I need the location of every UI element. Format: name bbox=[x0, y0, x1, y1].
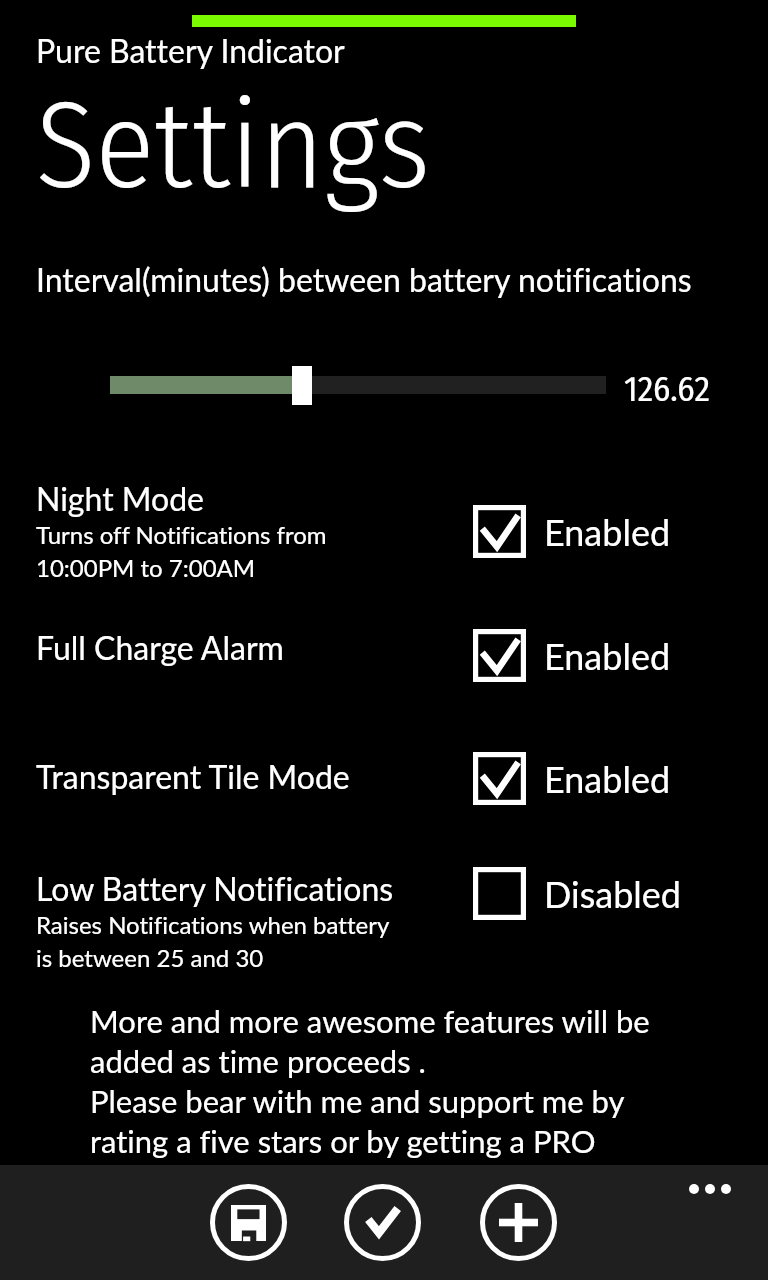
button[interactable]: More options bbox=[681, 1171, 739, 1207]
button[interactable]: Enabled bbox=[473, 752, 671, 805]
staticText: 10:00PM to 7:00AM bbox=[36, 553, 256, 582]
staticText: Turns off Notifications from bbox=[36, 520, 327, 549]
staticText: rating a five stars or by getting a PRO bbox=[90, 1122, 596, 1159]
button[interactable]: Interval slider bbox=[110, 366, 606, 405]
staticText: Enabled bbox=[544, 634, 671, 677]
staticText: More and more awesome features will be bbox=[90, 1002, 650, 1039]
staticText: Enabled bbox=[544, 757, 671, 800]
staticText: Transparent Tile Mode bbox=[36, 757, 350, 795]
button[interactable]: Enabled bbox=[473, 505, 671, 558]
staticText: added as time proceeds . bbox=[90, 1042, 426, 1079]
button[interactable]: Add bbox=[480, 1184, 557, 1261]
button[interactable]: Night Mode bbox=[36, 479, 466, 583]
staticText: Interval(minutes) between battery notifi… bbox=[36, 260, 692, 298]
staticText: Night Mode bbox=[36, 479, 204, 517]
staticText: 126.62 bbox=[624, 368, 710, 410]
button[interactable]: Full Charge Alarm bbox=[36, 628, 466, 666]
button[interactable]: Confirm bbox=[344, 1184, 421, 1261]
staticText: Raises Notifications when battery bbox=[36, 910, 390, 939]
staticText: Low Battery Notifications bbox=[36, 869, 394, 907]
staticText: Settings bbox=[36, 73, 430, 219]
staticText: is between 25 and 30 bbox=[36, 943, 264, 972]
staticText: Enabled bbox=[544, 510, 671, 553]
staticText: Please bear with me and support me by bbox=[90, 1082, 625, 1119]
staticText: Full Charge Alarm bbox=[36, 628, 284, 666]
button[interactable]: Disabled bbox=[473, 867, 681, 920]
staticText: Disabled bbox=[544, 872, 681, 915]
button[interactable]: Enabled bbox=[473, 629, 671, 682]
button[interactable]: Transparent Tile Mode bbox=[36, 757, 466, 795]
staticText: Pure Battery Indicator bbox=[36, 31, 345, 69]
button[interactable]: Save bbox=[210, 1184, 287, 1261]
button[interactable]: Low Battery Notifications bbox=[36, 869, 466, 973]
